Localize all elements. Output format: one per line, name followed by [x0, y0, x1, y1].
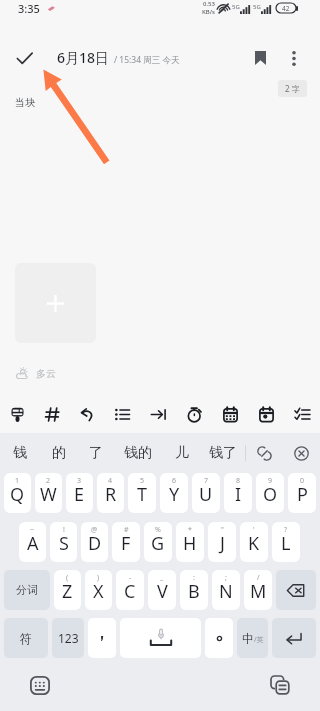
button[interactable]: 7 [192, 473, 220, 513]
staticText: F [121, 531, 131, 556]
staticText: ) [97, 573, 100, 583]
button[interactable] [205, 618, 233, 658]
button[interactable]: 钱的 [114, 433, 162, 473]
button[interactable]: Keyboard [22, 667, 58, 703]
staticText: 8 [236, 476, 241, 486]
button[interactable]: # [112, 522, 140, 562]
staticText: H [183, 531, 197, 556]
staticText: E [74, 482, 85, 507]
staticText: K [248, 531, 260, 556]
button[interactable]: * [176, 522, 204, 562]
button[interactable]: Backspace [276, 570, 316, 610]
button[interactable]: 的 [40, 433, 77, 473]
button[interactable]: Close [283, 433, 320, 473]
button[interactable]: 3 [66, 473, 93, 513]
staticText: ' [253, 525, 255, 535]
button[interactable]: Space, voice input [120, 618, 201, 658]
staticText: _ [160, 573, 164, 583]
button[interactable]: 儿 [162, 433, 201, 473]
button[interactable]: 1 [4, 473, 31, 513]
staticText: 2 [46, 476, 51, 486]
button[interactable]: ! [50, 522, 77, 562]
button[interactable]: 符 [4, 618, 48, 658]
staticText: Y [169, 482, 180, 507]
button[interactable]: Format [0, 396, 35, 433]
staticText: V [157, 579, 168, 604]
button[interactable]: 8 [224, 473, 252, 513]
staticText: 0.53 [203, 0, 215, 8]
button[interactable]: Link [246, 433, 283, 473]
button[interactable]: _ [148, 570, 176, 610]
button[interactable]: ' [240, 522, 268, 562]
button[interactable]: Clipboard [262, 667, 298, 703]
button[interactable]: 分词 [4, 570, 50, 610]
staticText: 的 [52, 444, 66, 462]
staticText: 0 [300, 476, 305, 486]
button[interactable]: 6 [160, 473, 188, 513]
staticText: M [250, 579, 267, 604]
staticText: A [27, 531, 39, 556]
staticText: L [281, 531, 291, 556]
button[interactable]: 9 [256, 473, 284, 513]
button[interactable]: 了 [77, 433, 114, 473]
button[interactable]: - [116, 570, 144, 610]
button[interactable] [88, 618, 116, 658]
button[interactable]: 钱了 [201, 433, 245, 473]
staticText: ? [284, 525, 288, 535]
button[interactable]: 2 [35, 473, 62, 513]
staticText: C [124, 579, 136, 604]
staticText: 了 [89, 444, 103, 462]
button[interactable]: Tag [35, 396, 70, 433]
button[interactable]: ? [272, 522, 300, 562]
button[interactable]: 123 [52, 618, 84, 658]
staticText: * [188, 525, 192, 535]
button[interactable]: ) [85, 570, 112, 610]
button[interactable]: ~ [19, 522, 46, 562]
button[interactable]: Checklist [284, 396, 320, 433]
staticText: 2 字 [285, 83, 300, 94]
button[interactable]: ; [212, 570, 240, 610]
staticText: ~ [30, 525, 35, 535]
button[interactable]: : [180, 570, 208, 610]
staticText: N [219, 579, 233, 604]
button[interactable]: % [144, 522, 172, 562]
staticText: / [257, 573, 260, 583]
button[interactable]: ( [54, 570, 81, 610]
button[interactable]: 5 [128, 473, 156, 513]
staticText: % [155, 525, 161, 535]
button[interactable]: Bookmark [243, 41, 277, 75]
button[interactable]: Calendar [212, 396, 248, 433]
staticText: 42 [282, 4, 290, 13]
button[interactable]: Undo [70, 396, 105, 433]
button[interactable]: More options [277, 41, 311, 75]
staticText: 4 [108, 476, 113, 486]
button[interactable]: " [208, 522, 236, 562]
staticText: 7 [204, 476, 209, 486]
staticText: / 15:34 周三 今天 [114, 54, 180, 66]
staticText: T [137, 482, 148, 507]
staticText: P [297, 482, 308, 507]
button[interactable]: / [244, 570, 272, 610]
staticText: 5G [232, 3, 240, 11]
staticText: G [151, 531, 165, 556]
button[interactable]: 4 [97, 473, 124, 513]
staticText: KB/s [202, 8, 215, 16]
staticText: J [220, 531, 225, 556]
button[interactable]: Indent [140, 396, 176, 433]
button[interactable]: Date [248, 396, 284, 433]
button[interactable]: Done [6, 40, 42, 76]
staticText: 5 [140, 476, 145, 486]
staticText: " [221, 525, 224, 535]
button[interactable]: @ [81, 522, 108, 562]
staticText: 9 [268, 476, 273, 486]
button[interactable]: Enter [272, 618, 316, 658]
button[interactable]: Timer [176, 396, 212, 433]
button[interactable]: Bulleted list [105, 396, 140, 433]
button[interactable]: 0 [288, 473, 316, 513]
staticText: : [193, 573, 195, 583]
button[interactable]: 中 [237, 618, 268, 658]
staticText: 5G [253, 3, 261, 11]
staticText: 3:35 [18, 1, 40, 16]
button[interactable]: 钱 [0, 433, 40, 473]
